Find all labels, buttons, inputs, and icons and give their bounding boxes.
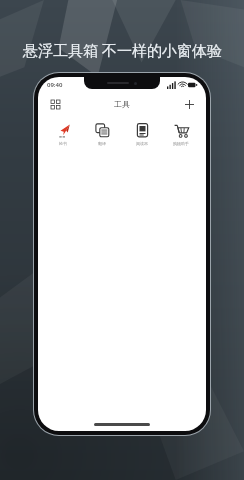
staticText: 购物助手 — [173, 141, 189, 146]
staticText: 抢书 — [59, 141, 67, 146]
staticText: 工具 — [114, 99, 130, 109]
staticText: 阅读器 — [136, 141, 148, 146]
button[interactable]: 抢书 — [44, 121, 82, 148]
button[interactable]: 翻译 — [83, 121, 121, 148]
staticText: 翻译 — [98, 141, 106, 146]
button[interactable]: Add — [181, 96, 197, 112]
staticText: 悬浮工具箱 不一样的小窗体验 — [23, 40, 222, 60]
button[interactable]: 阅读器 — [123, 121, 161, 148]
button[interactable]: Grid view — [47, 96, 63, 112]
button[interactable]: 购物助手 — [162, 121, 200, 148]
staticText: 09:40 — [47, 81, 63, 89]
